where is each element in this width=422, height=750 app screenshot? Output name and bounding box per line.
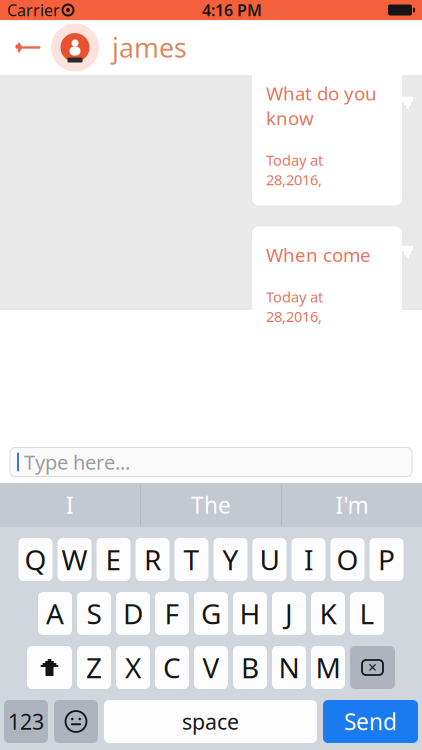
button[interactable]: O — [330, 538, 364, 581]
button[interactable]: I — [0, 483, 140, 527]
button[interactable]: L — [350, 592, 384, 635]
button[interactable]: X — [116, 646, 150, 689]
button[interactable]: Emoji — [54, 700, 98, 743]
staticText: Today at 28,2016, — [266, 150, 323, 189]
button[interactable]: james — [51, 20, 187, 75]
button[interactable]: U — [252, 538, 286, 581]
button[interactable]: F — [155, 592, 189, 635]
staticText: F — [164, 595, 179, 632]
staticText: X — [125, 649, 141, 686]
button[interactable]: Q — [18, 538, 52, 581]
staticText: V — [202, 649, 219, 686]
staticText: I — [304, 541, 313, 578]
staticText: The — [191, 490, 231, 520]
staticText: What do you know — [266, 81, 377, 130]
button[interactable]: C — [155, 646, 189, 689]
button[interactable]: Type here... — [0, 441, 422, 483]
button[interactable]: H — [233, 592, 267, 635]
button[interactable]: G — [194, 592, 228, 635]
staticText: U — [259, 541, 279, 578]
staticText: Q — [24, 541, 46, 578]
button[interactable]: R — [135, 538, 169, 581]
staticText: C — [163, 649, 181, 686]
button[interactable]: Z — [77, 646, 111, 689]
button[interactable]: Delete — [350, 646, 395, 689]
button[interactable]: I'm — [282, 483, 422, 527]
staticText: M — [315, 649, 340, 686]
staticText: ✕ — [367, 661, 377, 674]
staticText: W — [61, 541, 87, 578]
staticText: L — [359, 595, 374, 632]
staticText: A — [46, 595, 64, 632]
staticText: Today at 28,2016, — [266, 287, 323, 326]
button[interactable]: P — [369, 538, 403, 581]
staticText: Carrier — [7, 0, 60, 21]
button[interactable]: W — [57, 538, 91, 581]
button[interactable]: Shift — [27, 646, 72, 689]
staticText: N — [278, 649, 299, 686]
staticText: E — [105, 541, 121, 578]
staticText: T — [183, 541, 199, 578]
staticText: 4:16 PM — [202, 0, 262, 21]
staticText: I — [66, 490, 74, 520]
button[interactable]: A — [38, 592, 72, 635]
staticText: D — [123, 595, 143, 632]
staticText: K — [319, 595, 336, 632]
button[interactable]: Send — [323, 700, 418, 743]
button[interactable]: T — [174, 538, 208, 581]
staticText: J — [285, 595, 293, 632]
staticText: Y — [222, 541, 238, 578]
staticText: space — [182, 707, 239, 736]
button[interactable]: The — [141, 483, 281, 527]
button[interactable]: space — [104, 700, 317, 743]
button[interactable]: V — [194, 646, 228, 689]
staticText: H — [239, 595, 260, 632]
button[interactable]: N — [272, 646, 306, 689]
staticText: Z — [86, 649, 102, 686]
button[interactable]: I — [291, 538, 325, 581]
staticText: james — [112, 30, 187, 65]
staticText: S — [86, 595, 101, 632]
button[interactable]: B — [233, 646, 267, 689]
staticText: Type here... — [24, 449, 130, 475]
staticText: B — [241, 649, 259, 686]
button[interactable]: Back — [5, 20, 51, 75]
button[interactable]: S — [77, 592, 111, 635]
staticText: Send — [344, 706, 397, 736]
staticText: G — [201, 595, 221, 632]
staticText: P — [378, 541, 395, 578]
button[interactable]: M — [311, 646, 345, 689]
button[interactable]: J — [272, 592, 306, 635]
button[interactable]: Y — [213, 538, 247, 581]
button[interactable]: K — [311, 592, 345, 635]
button[interactable]: 123 — [4, 700, 48, 743]
button[interactable]: D — [116, 592, 150, 635]
staticText: I'm — [335, 490, 368, 520]
staticText: 123 — [8, 707, 44, 736]
button[interactable]: E — [96, 538, 130, 581]
staticText: O — [336, 541, 358, 578]
staticText: When come — [266, 242, 371, 267]
staticText: R — [144, 541, 161, 578]
